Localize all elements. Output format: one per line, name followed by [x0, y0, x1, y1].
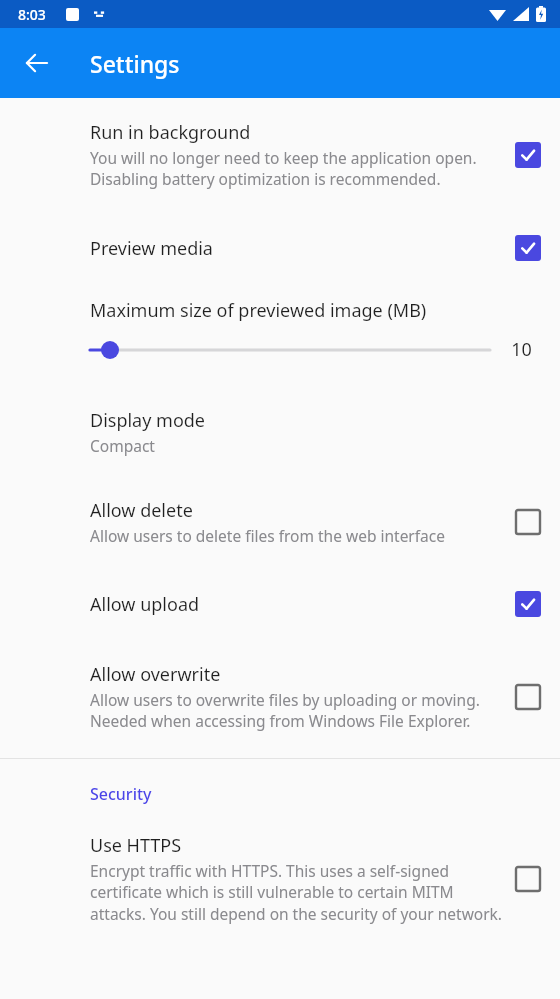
staticText: 10	[511, 337, 532, 362]
button[interactable]: Display mode	[0, 394, 560, 470]
staticText: 8:03	[18, 5, 46, 24]
button[interactable]: Run in background	[0, 106, 560, 204]
button[interactable]: Checked	[504, 580, 552, 628]
staticText: Allow upload	[90, 592, 200, 617]
staticText: Display mode	[90, 408, 206, 433]
button[interactable]: Allow delete	[0, 484, 560, 560]
staticText: Use HTTPS	[90, 833, 182, 858]
button[interactable]: Unchecked	[504, 673, 552, 721]
button[interactable]: Allow overwrite	[0, 648, 560, 746]
staticText: Encrypt traffic with HTTPS. This uses a …	[90, 860, 504, 925]
button[interactable]: Preview media	[0, 210, 560, 286]
staticText: Allow overwrite	[90, 662, 221, 687]
button[interactable]: Maximum size of previewed image (MB)	[0, 292, 560, 368]
button[interactable]: Allow upload	[0, 566, 560, 642]
staticText: Run in background	[90, 120, 251, 145]
button[interactable]: Unchecked	[504, 855, 552, 903]
staticText: Settings	[90, 48, 180, 79]
staticText: Allow users to overwrite files by upload…	[90, 689, 504, 732]
button[interactable]: Back	[13, 39, 61, 87]
staticText: Compact	[90, 435, 155, 456]
button[interactable]: Use HTTPS	[0, 819, 560, 939]
staticText: Security	[90, 783, 152, 805]
staticText: Allow delete	[90, 498, 193, 523]
staticText: Maximum size of previewed image (MB)	[90, 298, 427, 323]
staticText: Preview media	[90, 236, 213, 261]
staticText: You will no longer need to keep the appl…	[90, 147, 504, 190]
button[interactable]: Checked	[504, 224, 552, 272]
button[interactable]: Unchecked	[504, 498, 552, 546]
staticText: Allow users to delete files from the web…	[90, 525, 445, 546]
button[interactable]: Checked	[504, 131, 552, 179]
